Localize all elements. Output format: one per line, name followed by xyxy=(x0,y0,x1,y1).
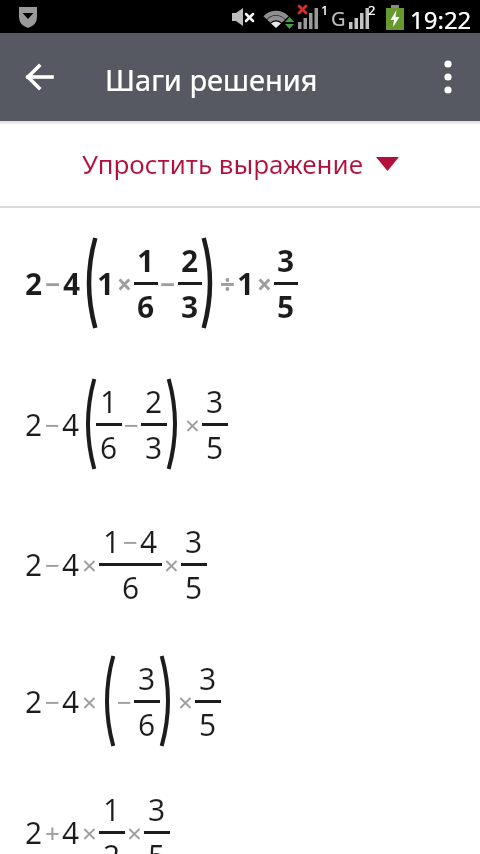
staticText: × xyxy=(82,815,97,850)
staticText: − xyxy=(117,684,132,719)
staticText: × xyxy=(185,407,200,442)
staticText: 1 xyxy=(103,789,121,830)
staticText: × xyxy=(257,266,272,301)
staticText: 2 xyxy=(368,1,376,19)
button[interactable] xyxy=(12,49,68,105)
staticText: 5 xyxy=(148,835,166,854)
staticText: 6 xyxy=(138,704,156,745)
staticText: 1 xyxy=(100,381,118,422)
staticText: 2 xyxy=(25,404,43,445)
staticText: 3 xyxy=(206,381,224,422)
staticText: × xyxy=(117,266,132,301)
staticText: Шаги решения xyxy=(105,60,318,99)
staticText: × xyxy=(82,684,97,719)
staticText: 5 xyxy=(277,286,295,327)
staticText: ÷ xyxy=(220,266,235,301)
staticText: G xyxy=(331,5,346,32)
staticText: 2 xyxy=(25,812,43,853)
staticText: 2 xyxy=(181,240,199,281)
staticText: 5 xyxy=(199,704,217,745)
staticText: 2 xyxy=(25,263,43,304)
staticText: 2 xyxy=(25,544,43,585)
staticText: 19:22 xyxy=(410,3,472,36)
staticText: 1 xyxy=(137,240,155,281)
staticText: 6 xyxy=(137,286,155,327)
staticText: 3 xyxy=(185,521,203,562)
staticText: − xyxy=(45,407,60,442)
staticText: × xyxy=(127,815,142,850)
button[interactable] xyxy=(424,53,472,101)
staticText: 3 xyxy=(138,658,156,699)
staticText: 3 xyxy=(199,658,217,699)
staticText: × xyxy=(178,684,193,719)
staticText: − xyxy=(160,266,176,301)
staticText: + xyxy=(45,815,60,850)
staticText: 4 xyxy=(140,521,158,562)
staticText: × xyxy=(82,547,97,582)
staticText: − xyxy=(45,266,61,301)
staticText: 4 xyxy=(62,812,80,853)
staticText: 3 xyxy=(145,427,163,468)
staticText: 2 xyxy=(25,681,43,722)
staticText: 4 xyxy=(62,544,80,585)
staticText: 4 xyxy=(62,681,80,722)
staticText: 6 xyxy=(100,427,118,468)
staticText: 1 xyxy=(321,1,329,19)
staticText: Упростить выражение xyxy=(82,146,363,181)
staticText: 4 xyxy=(62,404,80,445)
staticText: 1 xyxy=(103,521,121,562)
staticText: − xyxy=(123,524,138,559)
staticText: 1 xyxy=(237,263,255,304)
staticText: 3 xyxy=(148,789,166,830)
staticText: 6 xyxy=(122,567,140,608)
staticText: 5 xyxy=(185,567,203,608)
staticText: 2 xyxy=(145,381,163,422)
button[interactable]: Упростить выражение xyxy=(82,146,399,181)
staticText: × xyxy=(164,547,179,582)
staticText: − xyxy=(45,547,60,582)
staticText: 4 xyxy=(63,263,81,304)
staticText: − xyxy=(45,684,60,719)
staticText: 3 xyxy=(181,286,199,327)
staticText: 3 xyxy=(277,240,295,281)
staticText: 2 xyxy=(103,835,121,854)
staticText: 1 xyxy=(97,263,115,304)
staticText: − xyxy=(124,407,139,442)
staticText: 5 xyxy=(206,427,224,468)
